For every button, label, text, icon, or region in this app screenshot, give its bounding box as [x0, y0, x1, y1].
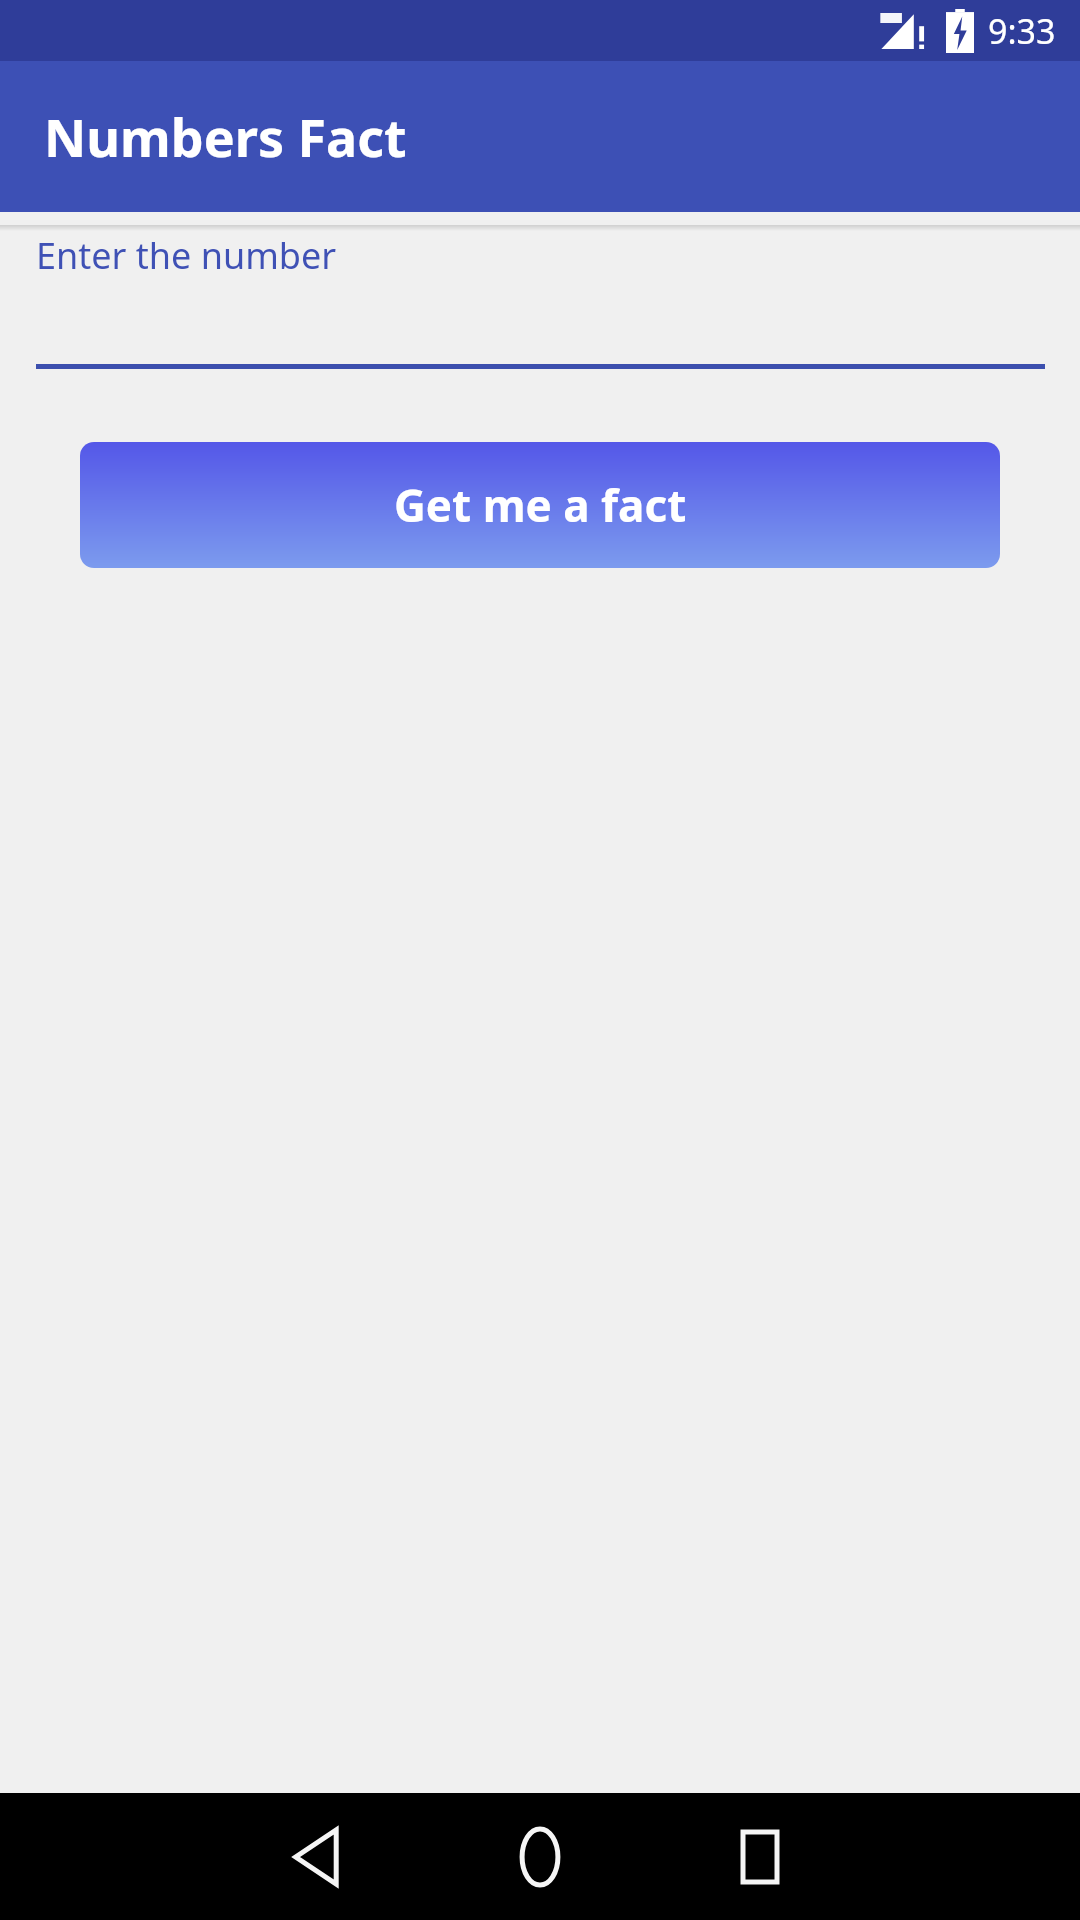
staticText: Enter the number: [36, 231, 337, 280]
button[interactable]: Get me a fact: [80, 442, 1000, 568]
button[interactable]: Recents: [700, 1797, 820, 1917]
button[interactable]: Back: [260, 1797, 380, 1917]
button[interactable]: Home: [480, 1797, 600, 1917]
staticText: Get me a fact: [394, 475, 687, 535]
staticText: 9:33: [988, 8, 1056, 54]
staticText: Numbers Fact: [44, 101, 407, 172]
